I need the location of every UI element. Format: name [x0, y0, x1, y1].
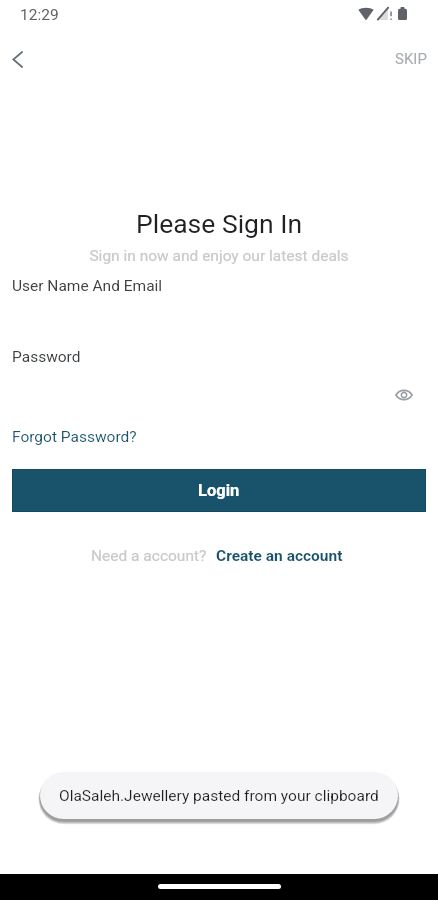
button[interactable]: User Name And Email — [0, 270, 438, 330]
button[interactable]: Password — [0, 341, 438, 403]
button[interactable]: Create an account — [211, 542, 348, 570]
staticText: Create an account — [216, 547, 343, 565]
staticText: Login — [198, 481, 240, 500]
staticText: SKIP — [395, 50, 427, 68]
staticText: OlaSaleh.Jewellery pasted from your clip… — [59, 787, 379, 805]
staticText: Forgot Password? — [12, 428, 137, 446]
staticText: Sign in now and enjoy our latest deals — [0, 247, 438, 265]
staticText: Please Sign In — [0, 208, 438, 239]
button[interactable]: Show password — [391, 382, 417, 408]
staticText: Password — [12, 348, 81, 366]
button[interactable]: Login — [12, 469, 426, 512]
staticText: 12:29 — [20, 6, 59, 24]
staticText: Need a account? — [91, 547, 207, 565]
staticText: User Name And Email — [12, 277, 163, 295]
button[interactable]: Back — [0, 40, 36, 78]
button[interactable]: Forgot Password? — [12, 428, 137, 446]
button[interactable]: SKIP — [395, 50, 427, 68]
